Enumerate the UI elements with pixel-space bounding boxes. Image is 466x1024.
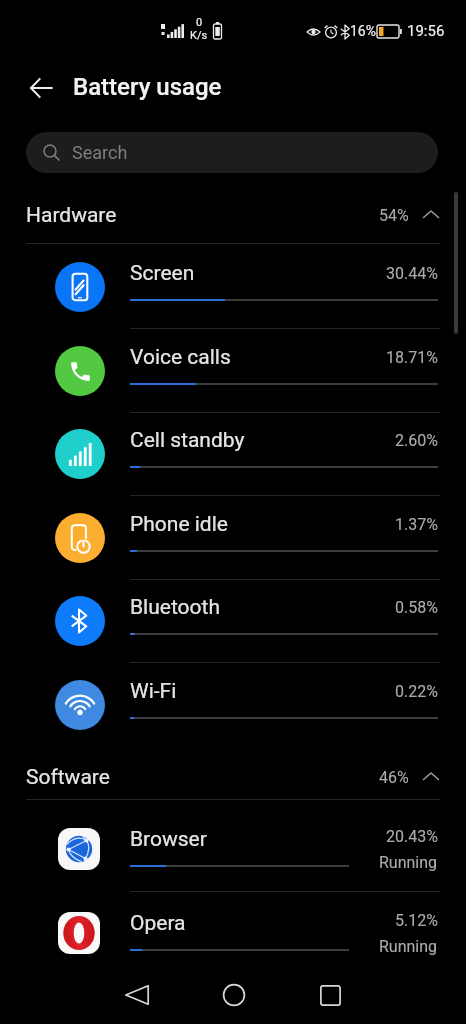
staticText: 54% xyxy=(379,206,409,225)
staticText: Screen xyxy=(130,261,195,286)
button[interactable]: Recent apps xyxy=(290,966,371,1024)
staticText: 18.71% xyxy=(386,348,438,367)
staticText: 0.58% xyxy=(395,598,438,617)
staticText: 20.43% xyxy=(386,827,438,846)
staticText: 16% xyxy=(350,23,376,39)
button[interactable]: Search xyxy=(26,132,438,173)
staticText: Software xyxy=(26,765,110,790)
staticText: Search xyxy=(72,142,128,163)
staticText: Running xyxy=(379,937,438,956)
staticText: Battery usage xyxy=(73,73,222,101)
button[interactable]: Back xyxy=(20,66,64,110)
staticText: Phone idle xyxy=(130,512,228,537)
staticText: 1.37% xyxy=(395,515,438,534)
staticText: Running xyxy=(379,853,438,872)
button[interactable]: Hardware xyxy=(0,191,466,239)
button[interactable]: Software xyxy=(0,753,466,801)
staticText: 46% xyxy=(379,768,409,787)
staticText: K/s xyxy=(190,29,208,42)
staticText: Wi-Fi xyxy=(130,679,177,704)
staticText: Bluetooth xyxy=(130,595,220,620)
staticText: 5.12% xyxy=(395,911,438,930)
button[interactable]: Home xyxy=(193,966,274,1024)
staticText: 19:56 xyxy=(407,22,445,40)
staticText: 0.22% xyxy=(395,682,438,701)
staticText: 30.44% xyxy=(386,264,438,283)
button[interactable]: Back xyxy=(96,966,177,1024)
staticText: 2.60% xyxy=(395,431,438,450)
staticText: Cell standby xyxy=(130,428,245,453)
staticText: Hardware xyxy=(26,203,117,228)
staticText: Voice calls xyxy=(130,345,231,370)
staticText: Opera xyxy=(130,911,186,936)
staticText: Browser xyxy=(130,827,207,852)
staticText: 0 xyxy=(196,16,203,29)
